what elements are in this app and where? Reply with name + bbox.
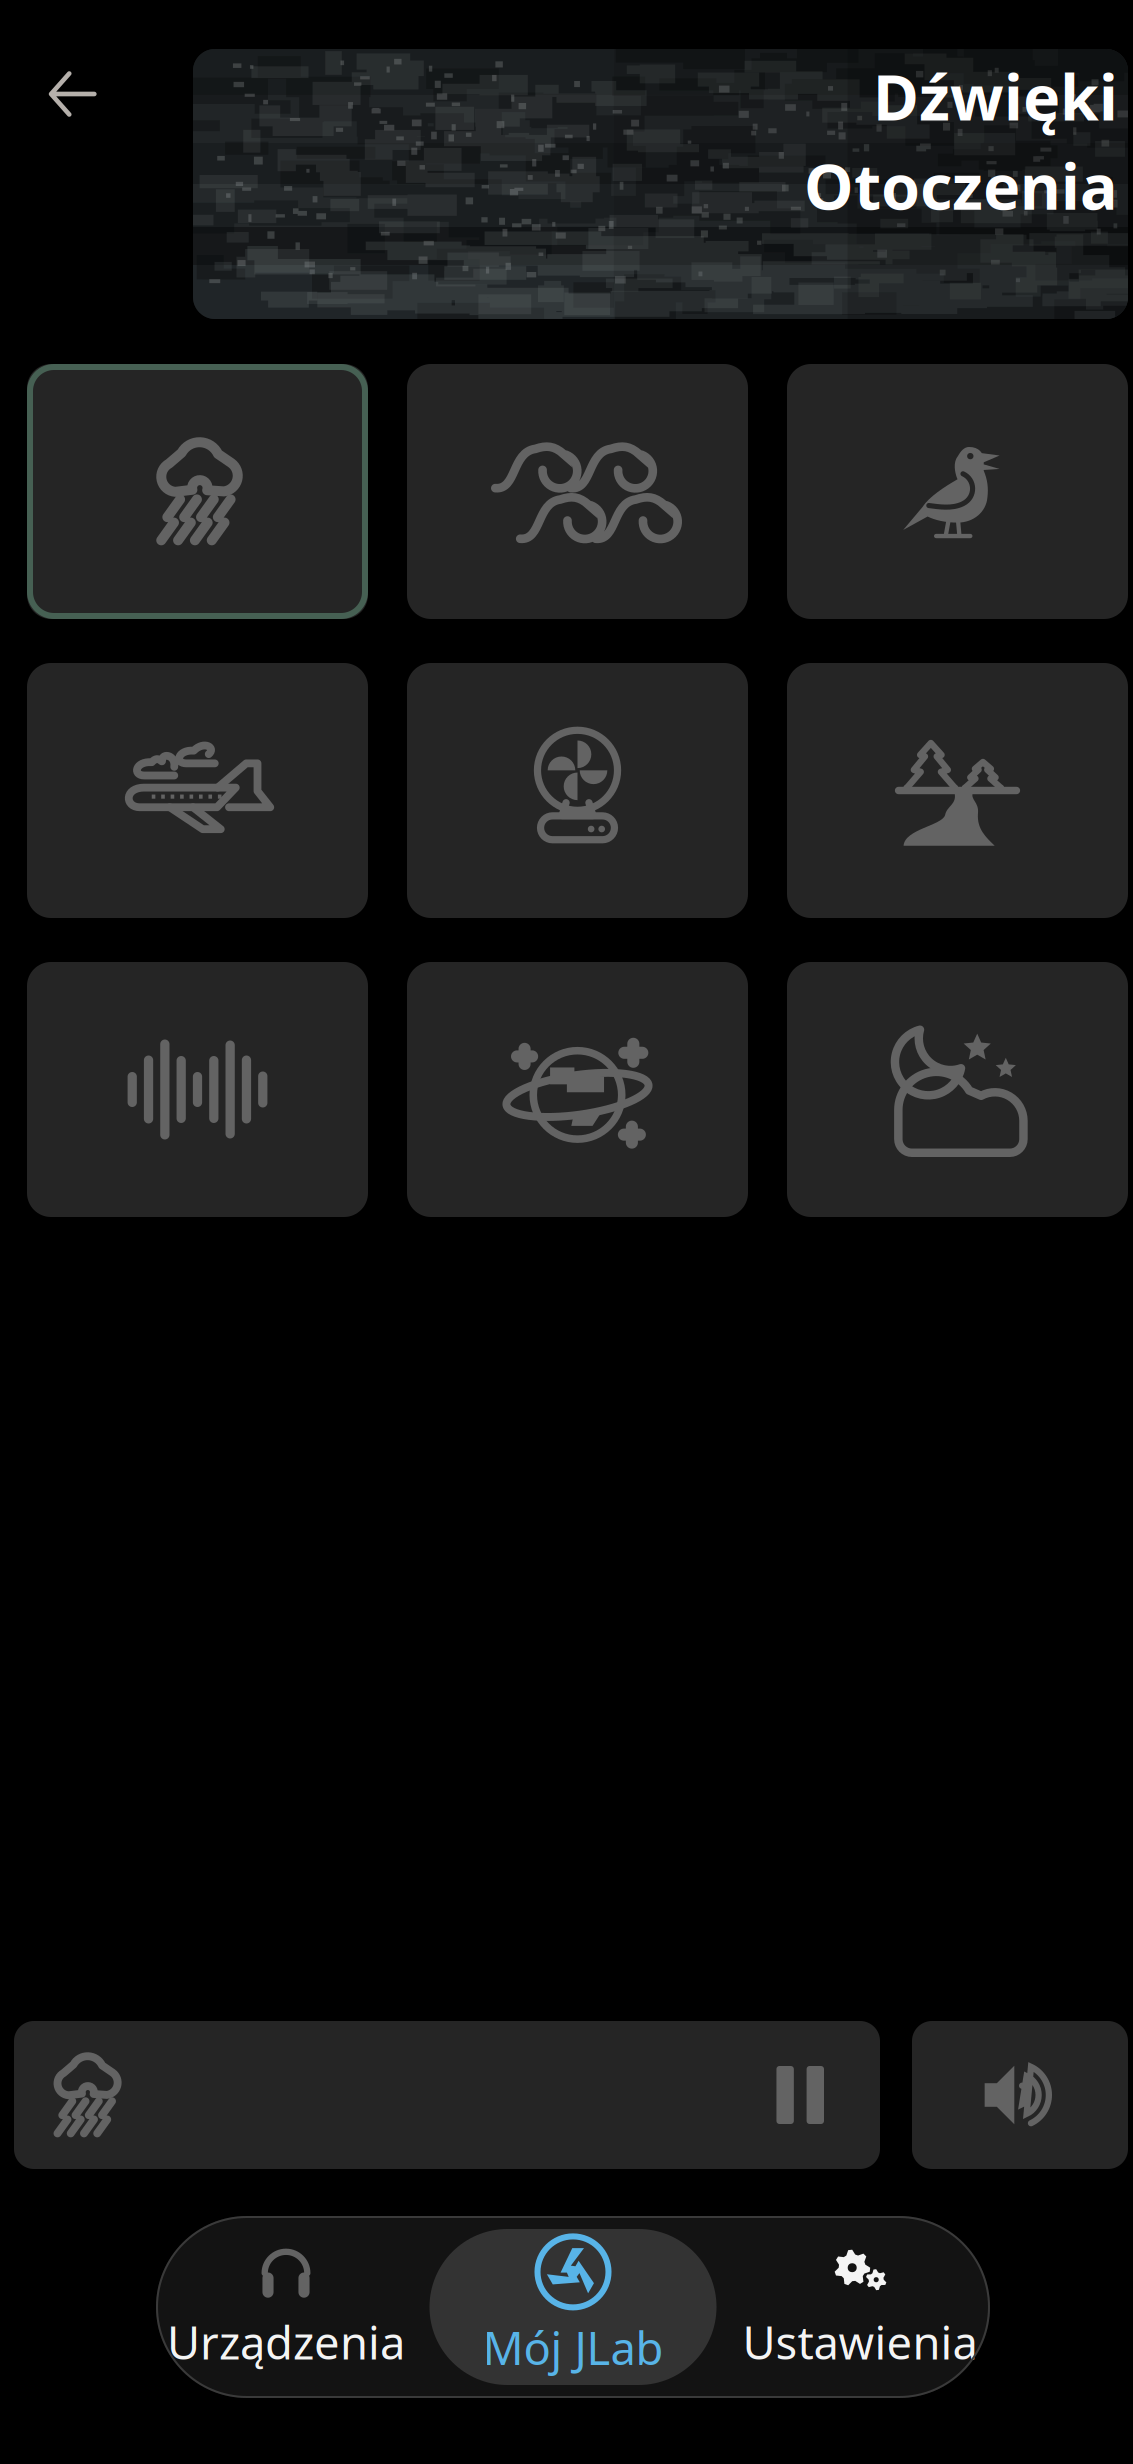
button[interactable]	[14, 2021, 880, 2169]
button[interactable]	[27, 663, 368, 918]
staticText: Ustawienia	[742, 2312, 977, 2372]
staticText: Urządzenia	[167, 2312, 405, 2372]
button[interactable]: Ustawienia	[716, 2229, 1003, 2385]
button[interactable]: Mój JLab	[429, 2229, 716, 2385]
staticText: Mój JLab	[482, 2317, 663, 2378]
button[interactable]	[787, 364, 1128, 619]
button[interactable]	[407, 663, 748, 918]
button[interactable]	[27, 962, 368, 1217]
button[interactable]: Wstecz	[17, 39, 127, 149]
button[interactable]	[787, 962, 1128, 1217]
button[interactable]	[787, 663, 1128, 918]
button[interactable]: Urządzenia	[142, 2229, 429, 2385]
button[interactable]	[407, 962, 748, 1217]
staticText: Dźwięki	[873, 55, 1118, 138]
button[interactable]: Głośność	[912, 2021, 1128, 2169]
staticText: Otoczenia	[804, 144, 1118, 227]
button[interactable]	[27, 364, 368, 619]
button[interactable]	[407, 364, 748, 619]
